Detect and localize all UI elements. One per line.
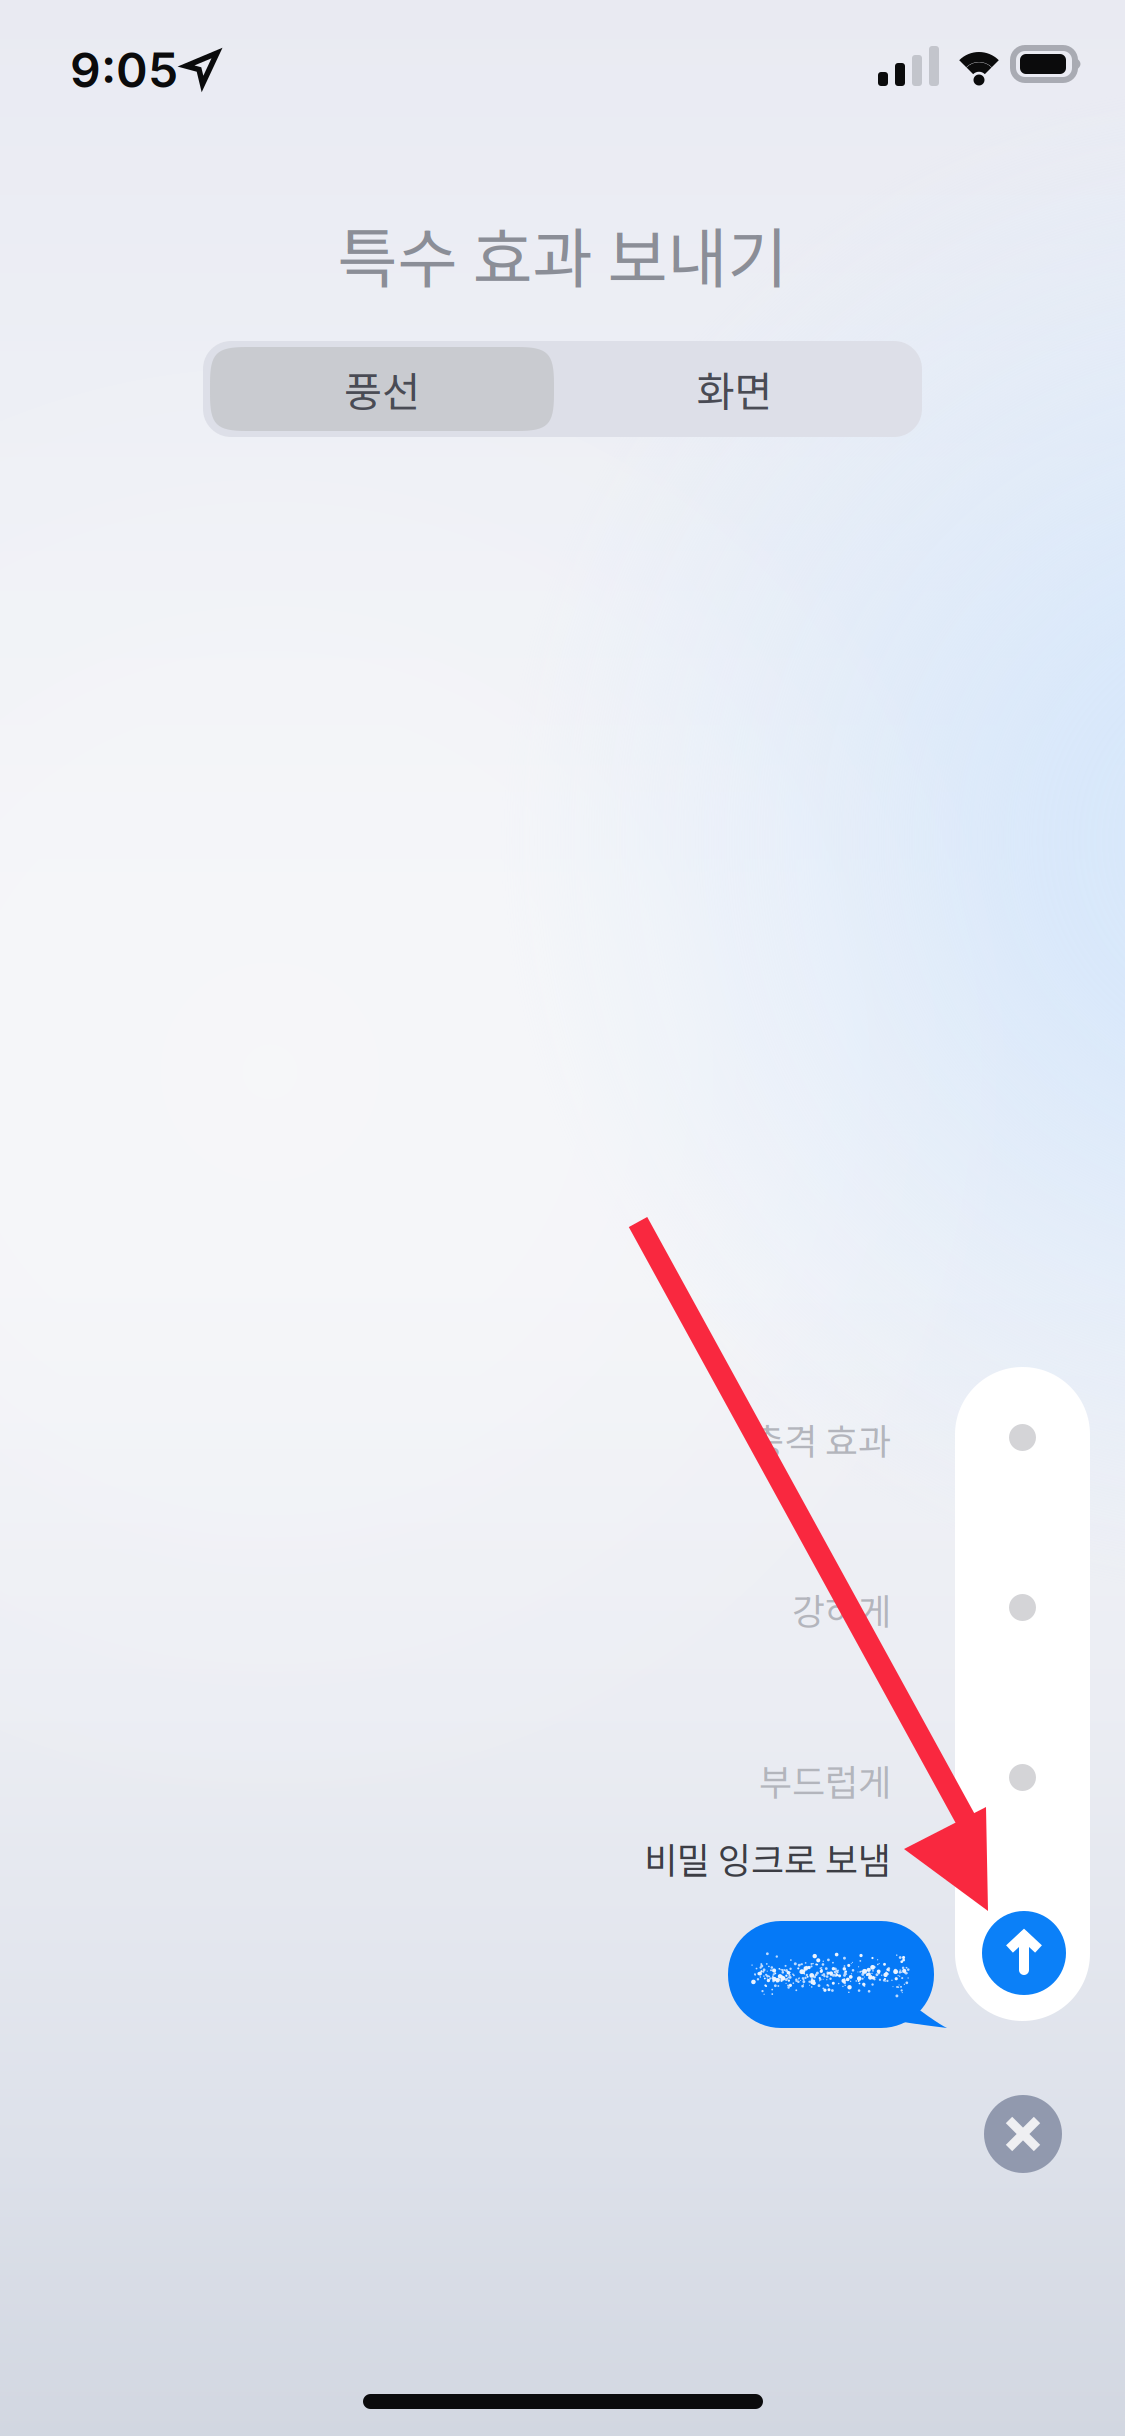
button[interactable]: 비밀 잉크로 보냄 (451, 1822, 891, 1894)
staticText: 충격 효과 (751, 1413, 891, 1465)
button[interactable]: 화면 (554, 347, 915, 431)
button[interactable]: 풍선 (210, 347, 554, 431)
button[interactable]: 부드럽게 (451, 1744, 891, 1816)
button[interactable]: Send (982, 1911, 1066, 1995)
staticText: 비밀 잉크로 보냄 (644, 1832, 891, 1884)
button[interactable]: Close (984, 2095, 1062, 2173)
staticText: 부드럽게 (759, 1754, 891, 1806)
staticText: 강하게 (792, 1583, 891, 1635)
staticText: 화면 (696, 359, 772, 419)
staticText: 특수 효과 보내기 (337, 207, 787, 301)
button[interactable]: 충격 효과 (451, 1403, 891, 1475)
staticText: 풍선 (344, 359, 420, 419)
staticText: 9:05 (70, 41, 178, 99)
button[interactable]: 강하게 (451, 1573, 891, 1645)
